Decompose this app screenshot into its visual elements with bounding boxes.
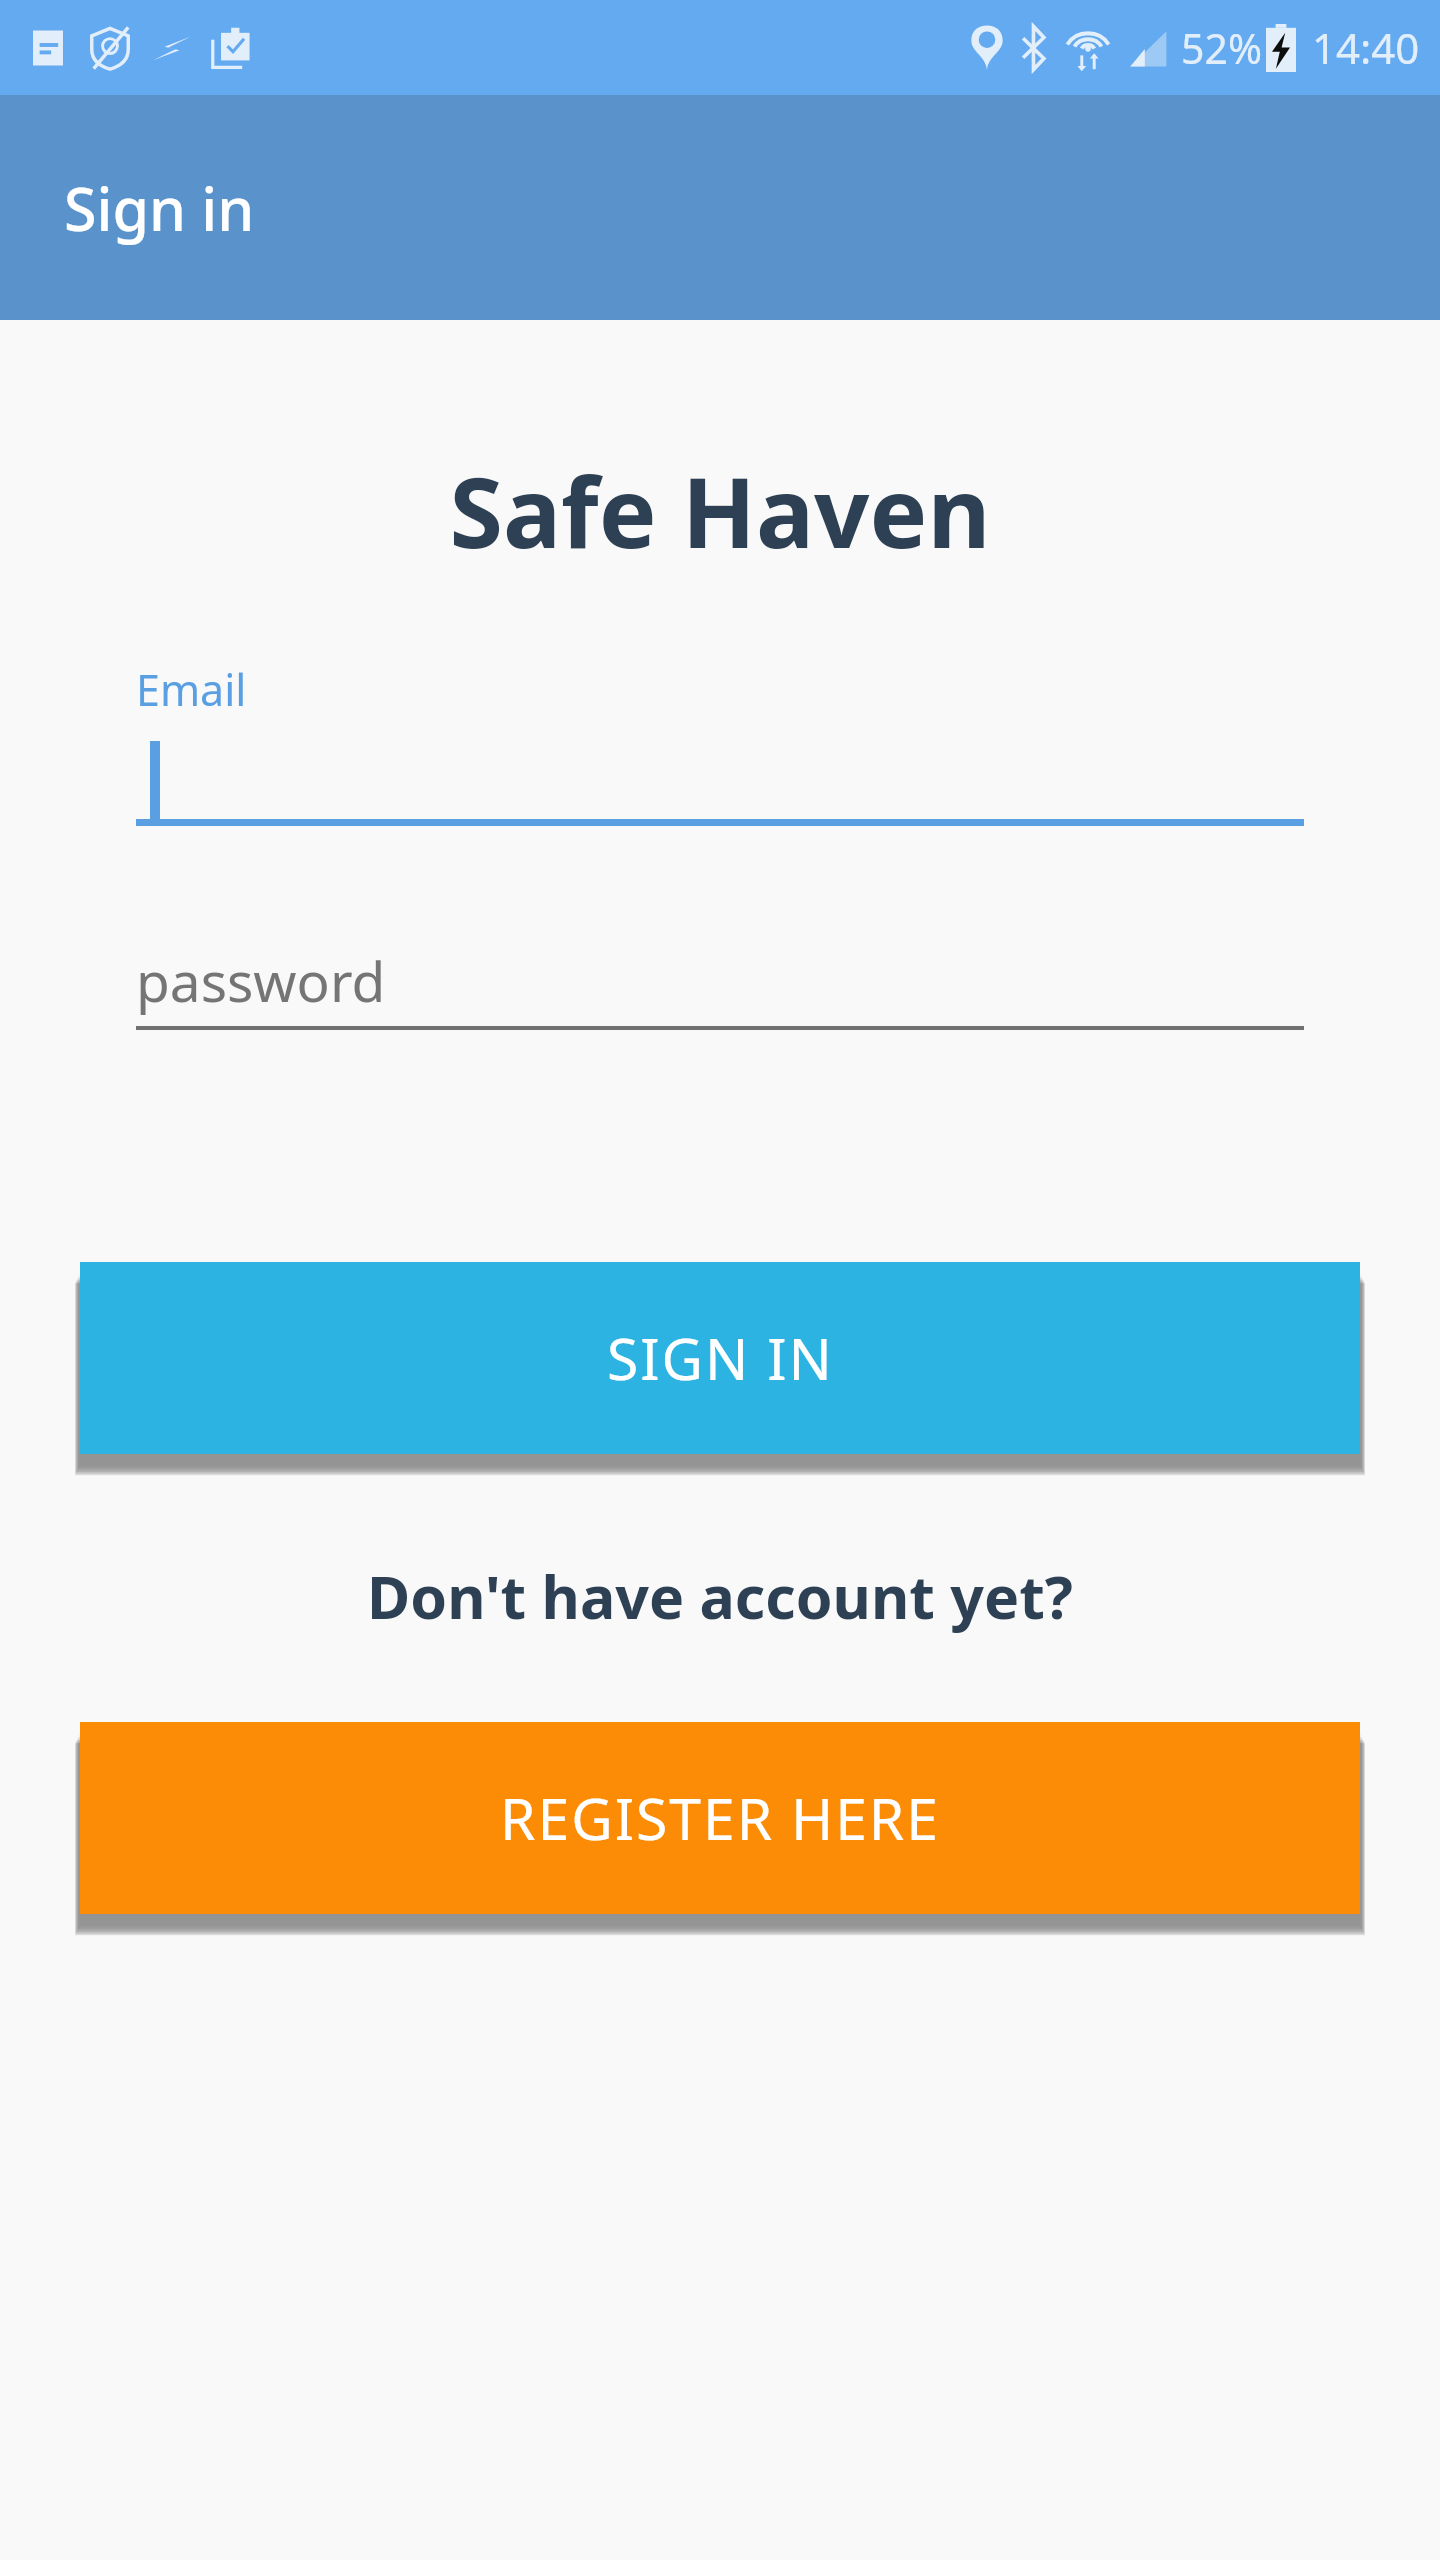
staticText: 52% [1181, 20, 1262, 76]
button[interactable]: REGISTER HERE [80, 1722, 1360, 1914]
staticText: Don't have account yet? [0, 1556, 1440, 1636]
staticText: 14:40 [1312, 19, 1420, 76]
staticText: SIGN IN [607, 1319, 834, 1397]
button[interactable]: password [136, 934, 1304, 1030]
button[interactable]: Email [136, 660, 1304, 826]
staticText: password [136, 943, 386, 1018]
staticText: Sign in [64, 168, 255, 248]
staticText: Safe Haven [0, 444, 1440, 576]
staticText: REGISTER HERE [500, 1779, 940, 1857]
button[interactable]: SIGN IN [80, 1262, 1360, 1454]
staticText: Email [136, 660, 247, 719]
